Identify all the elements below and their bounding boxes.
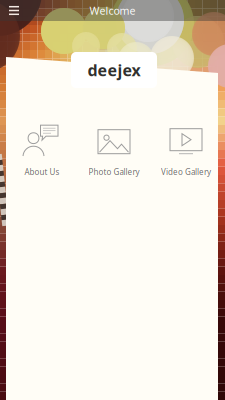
staticText: Photo Gallery xyxy=(88,167,139,177)
button[interactable]: Video Gallery xyxy=(155,123,217,177)
staticText: Welcome xyxy=(89,3,135,18)
staticText: deejex xyxy=(87,59,140,81)
button[interactable]: Photo Gallery xyxy=(83,123,145,177)
button[interactable]: About Us xyxy=(11,123,73,177)
staticText: About Us xyxy=(24,167,59,177)
staticText: Video Gallery xyxy=(161,167,211,177)
button[interactable]: Menu xyxy=(0,0,28,21)
